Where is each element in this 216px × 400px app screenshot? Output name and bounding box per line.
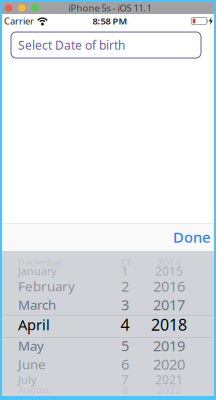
- staticText: January: [18, 264, 56, 278]
- staticText: March: [18, 296, 56, 313]
- staticText: 3: [121, 295, 129, 314]
- staticText: 6: [121, 354, 129, 374]
- staticText: 2020: [153, 354, 185, 374]
- staticText: 2022: [157, 382, 181, 397]
- staticText: 2014: [157, 255, 181, 270]
- staticText: 2017: [153, 295, 185, 314]
- staticText: 8:58 PM: [92, 15, 127, 27]
- button[interactable]: Done: [159, 223, 214, 251]
- staticText: 2021: [155, 371, 183, 387]
- staticText: 1: [121, 263, 128, 279]
- staticText: 2019: [153, 336, 185, 355]
- staticText: August: [18, 383, 49, 396]
- staticText: 4: [120, 314, 129, 335]
- staticText: Select Date of birth: [18, 37, 125, 53]
- staticText: iPhone 5s - iOS 11.1: [68, 2, 151, 14]
- staticText: 2: [121, 276, 129, 296]
- button[interactable]: Select Date of birth: [11, 32, 201, 58]
- staticText: Done: [173, 227, 210, 247]
- staticText: 2015: [155, 263, 183, 279]
- staticText: 8: [122, 382, 128, 397]
- staticText: Carrier: [4, 15, 34, 27]
- staticText: February: [18, 277, 75, 295]
- staticText: April: [18, 315, 50, 334]
- staticText: June: [18, 355, 46, 373]
- staticText: 2016: [153, 276, 185, 296]
- staticText: December: [18, 256, 63, 269]
- staticText: July: [18, 372, 36, 387]
- staticText: May: [18, 337, 44, 354]
- staticText: 5: [121, 336, 129, 355]
- staticText: 2018: [151, 314, 187, 335]
- staticText: 31: [119, 255, 131, 270]
- staticText: 7: [121, 371, 128, 387]
